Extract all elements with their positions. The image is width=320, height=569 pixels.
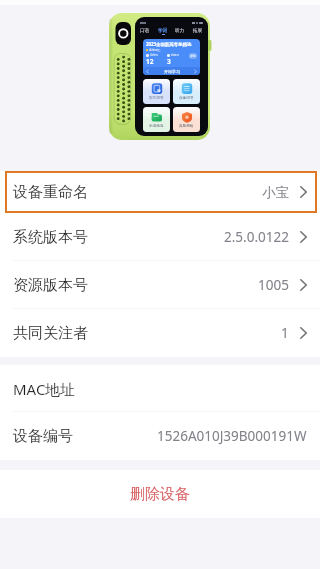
staticText: 2.5.0.0122 — [224, 228, 289, 246]
staticText: MAC地址 — [13, 379, 76, 399]
staticText: 设备编号 — [13, 427, 73, 446]
staticText: 1 — [281, 324, 289, 342]
button[interactable]: 设备编号 — [0, 412, 320, 460]
staticText: 设备重命名 — [13, 183, 88, 202]
button[interactable]: 删除设备 — [0, 470, 320, 518]
staticText: 听力 — [175, 28, 185, 34]
button[interactable]: MAC地址 — [0, 365, 320, 412]
staticText: 1526A010J39B000191W — [157, 427, 307, 445]
staticText: 资源版本号 — [13, 276, 88, 295]
staticText: 真题测验 — [179, 124, 194, 129]
staticText: 删除设备 — [130, 485, 190, 504]
staticText: 待复习 — [171, 53, 180, 57]
staticText: 系统版本号 — [13, 228, 88, 247]
staticText: 待学习 — [150, 53, 159, 57]
staticText: 开始学习 — [164, 69, 180, 74]
staticText: 学进精选 — [149, 124, 164, 129]
staticText: 3 — [167, 57, 171, 66]
staticText: 详情 — [190, 54, 196, 58]
staticText: 1005 — [258, 276, 289, 294]
staticText: 共同关注者 — [13, 324, 88, 343]
staticText: 口语 — [140, 28, 150, 34]
staticText: 高考词汇 — [149, 48, 161, 52]
staticText: 2023全国新高考卷精选 — [146, 41, 192, 47]
staticText: 小宝 — [262, 184, 289, 201]
button[interactable]: 系统版本号 — [0, 213, 320, 261]
staticText: 学词 — [158, 28, 168, 34]
button[interactable]: 共同关注者 — [0, 309, 320, 357]
staticText: 拓展 — [193, 28, 203, 34]
button[interactable]: 资源版本号 — [0, 261, 320, 309]
staticText: 自建词书 — [179, 96, 194, 101]
staticText: 官方词书 — [149, 96, 164, 101]
staticText: 12 — [146, 57, 154, 66]
button[interactable]: 设备重命名 — [0, 171, 320, 213]
